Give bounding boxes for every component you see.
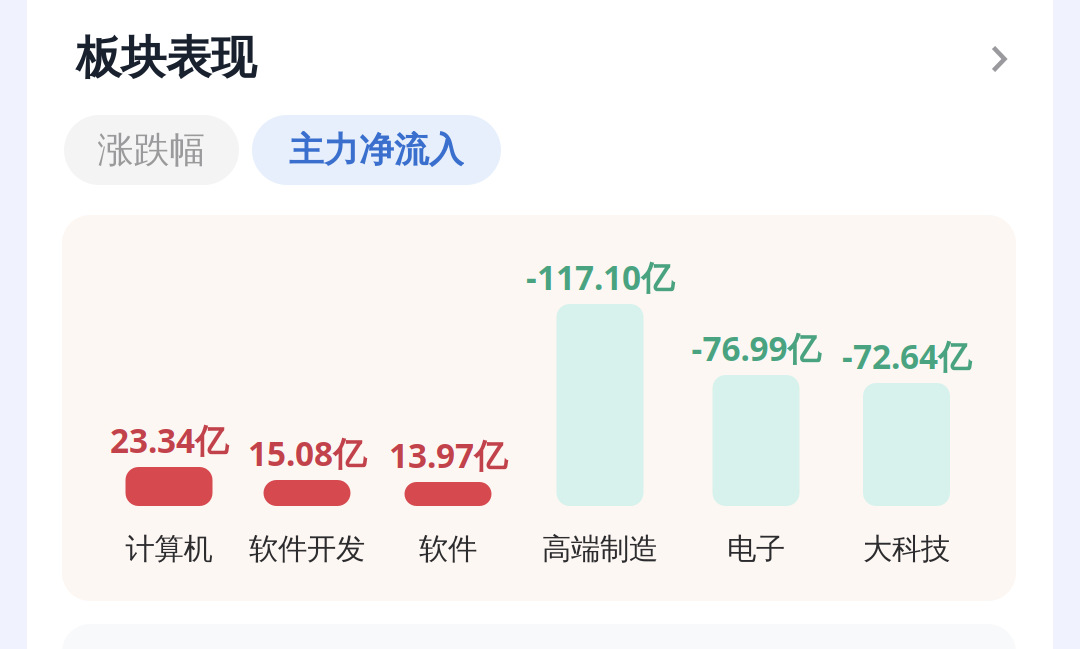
staticText: -76.99亿 [691,326,820,370]
button[interactable]: 主力净流入 [252,115,501,185]
staticText: 15.08亿 [248,431,366,475]
button[interactable]: 13.97亿 [298,240,598,580]
staticText: -117.10亿 [526,255,674,299]
staticText: -72.64亿 [842,334,971,378]
button[interactable]: -117.10亿 [450,240,750,580]
staticText: 大科技 [863,531,950,567]
staticText: 软件 [419,531,477,567]
staticText: 高端制造 [542,531,658,567]
button[interactable]: 查看全部板块 [971,31,1027,87]
staticText: 板块表现 [76,30,256,86]
button[interactable]: 23.34亿 [19,240,319,580]
staticText: 23.34亿 [110,418,228,462]
button[interactable]: 涨跌幅 [64,115,239,185]
staticText: 电子 [727,531,785,567]
button[interactable]: -72.64亿 [756,240,1056,580]
staticText: 13.97亿 [389,433,507,477]
staticText: 软件开发 [249,531,365,567]
button[interactable]: -76.99亿 [606,240,906,580]
staticText: 涨跌幅 [97,128,205,172]
staticText: 计算机 [125,531,212,567]
button[interactable]: 15.08亿 [157,240,457,580]
staticText: 主力净流入 [289,129,464,171]
